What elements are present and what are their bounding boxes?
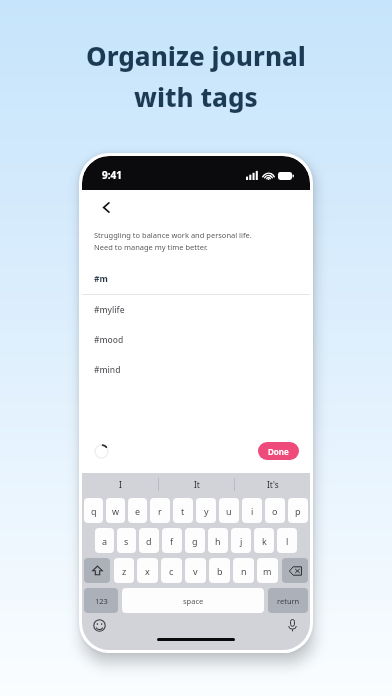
staticText: y <box>204 505 209 517</box>
staticText: return <box>277 596 300 606</box>
staticText: Need to manage my time better. <box>94 242 208 252</box>
staticText: #mind <box>94 364 121 376</box>
button[interactable]: d <box>139 528 159 553</box>
button[interactable]: x <box>137 558 158 583</box>
button[interactable]: #mood <box>82 325 310 355</box>
staticText: It <box>194 479 200 490</box>
staticText: o <box>272 505 278 517</box>
staticText: i <box>251 505 254 517</box>
button[interactable]: Done <box>258 442 299 460</box>
button[interactable]: u <box>219 498 239 523</box>
staticText: #mylife <box>94 304 125 316</box>
staticText: f <box>170 535 174 547</box>
staticText: 123 <box>95 596 108 606</box>
staticText: space <box>183 596 204 606</box>
staticText: n <box>241 565 247 577</box>
staticText: a <box>102 535 108 547</box>
staticText: r <box>158 505 162 517</box>
button[interactable]: It <box>159 473 234 495</box>
staticText: v <box>193 565 198 577</box>
staticText: h <box>215 535 221 547</box>
staticText: 9:41 <box>102 168 122 182</box>
button[interactable]: f <box>162 528 182 553</box>
staticText: m <box>263 565 272 577</box>
staticText: p <box>295 505 301 517</box>
staticText: It's <box>267 479 279 490</box>
button[interactable]: p <box>288 498 308 523</box>
button[interactable]: Key <box>282 558 308 583</box>
button[interactable]: y <box>196 498 216 523</box>
staticText: Organize journal <box>86 38 306 73</box>
staticText: #m <box>94 273 108 285</box>
staticText: #mood <box>94 334 124 346</box>
button[interactable]: h <box>208 528 228 553</box>
staticText: q <box>91 505 97 517</box>
staticText: c <box>169 565 174 577</box>
staticText: Done <box>268 446 289 457</box>
button[interactable]: g <box>185 528 205 553</box>
staticText: u <box>226 505 232 517</box>
button[interactable]: z <box>114 558 134 583</box>
button[interactable]: c <box>161 558 182 583</box>
button[interactable]: e <box>128 498 147 523</box>
staticText: j <box>240 535 243 547</box>
button[interactable]: r <box>150 498 170 523</box>
button[interactable]: l <box>277 528 297 553</box>
staticText: d <box>146 535 152 547</box>
button[interactable]: It's <box>235 473 310 495</box>
staticText: Struggling to balance work and personal … <box>94 230 252 240</box>
button[interactable]: Emoji <box>90 616 108 634</box>
staticText: x <box>145 565 150 577</box>
staticText: g <box>192 535 198 547</box>
button[interactable]: m <box>257 558 278 583</box>
button[interactable]: q <box>84 498 103 523</box>
button[interactable]: n <box>233 558 254 583</box>
staticText: t <box>181 505 185 517</box>
staticText: s <box>124 535 129 547</box>
button[interactable]: return <box>268 588 308 613</box>
staticText: e <box>135 505 141 517</box>
button[interactable]: b <box>209 558 230 583</box>
button[interactable]: j <box>231 528 251 553</box>
button[interactable]: i <box>242 498 262 523</box>
button[interactable]: #mind <box>82 355 310 385</box>
button[interactable]: Back <box>92 193 120 221</box>
button[interactable]: I <box>82 473 158 495</box>
button[interactable]: #m <box>82 264 310 294</box>
button[interactable]: s <box>117 528 136 553</box>
button[interactable]: o <box>265 498 285 523</box>
staticText: k <box>262 535 267 547</box>
button[interactable]: v <box>185 558 206 583</box>
staticText: z <box>122 565 127 577</box>
staticText: I <box>119 479 122 490</box>
button[interactable]: k <box>254 528 274 553</box>
button[interactable]: Key <box>84 558 110 583</box>
staticText: l <box>286 535 289 547</box>
button[interactable]: 123 <box>84 588 118 613</box>
staticText: b <box>217 565 223 577</box>
button[interactable]: space <box>122 588 264 613</box>
button[interactable]: a <box>95 528 114 553</box>
button[interactable]: w <box>106 498 125 523</box>
button[interactable]: #mylife <box>82 295 310 325</box>
staticText: w <box>112 505 120 517</box>
staticText: with tags <box>134 79 258 114</box>
button[interactable]: t <box>173 498 193 523</box>
button[interactable]: Dictation <box>283 616 301 634</box>
